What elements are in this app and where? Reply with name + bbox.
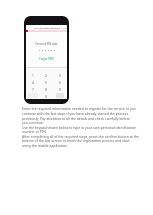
staticText: 8 [45,87,47,91]
staticText: 0 [45,94,47,98]
button[interactable]: 9 [53,85,67,92]
staticText: After completing all of the required ste… [22,134,140,139]
staticText: 6 [59,80,61,84]
button[interactable]: 1 [26,71,39,78]
button[interactable]: 5 [39,78,53,85]
staticText: using the mobile application. [22,143,140,148]
staticText: Use the keypad shown below to type in yo… [22,125,140,130]
staticText: 1 [32,73,34,77]
button[interactable]: 6 [53,78,67,85]
button[interactable]: 2 [39,71,53,78]
staticText: continue with the last steps if you have… [22,111,140,116]
staticText: bottom of the last screen to finish the … [22,138,140,143]
button[interactable]: Backspace [53,92,67,99]
button[interactable]: 8 [39,85,53,92]
button[interactable]: 4 [26,78,39,85]
button[interactable]: 0 [39,92,53,99]
staticText: 5 [45,80,47,84]
staticText: Enter the required information needed to… [22,106,140,111]
staticText: Cancel [61,27,67,30]
button[interactable]: 3 [53,71,67,78]
button[interactable] [26,92,39,99]
staticText: Forgot PIN? [26,57,67,61]
staticText: Personal PIN code [26,42,67,45]
button[interactable]: Forgot PIN? [26,57,67,61]
staticText: 4 [32,80,34,84]
staticText: Set up Mobile Banking [34,26,60,29]
staticText: previously. Pay attention to all the det… [22,116,140,121]
staticText: 2 [45,73,47,77]
staticText: number or PIN. [22,129,140,134]
staticText: you continue. [22,120,140,125]
staticText: 7 [32,87,34,91]
button[interactable]: Cancel [60,26,67,30]
button[interactable]: 7 [26,85,39,92]
staticText: 9 [59,87,61,91]
staticText: 3 [59,73,61,77]
